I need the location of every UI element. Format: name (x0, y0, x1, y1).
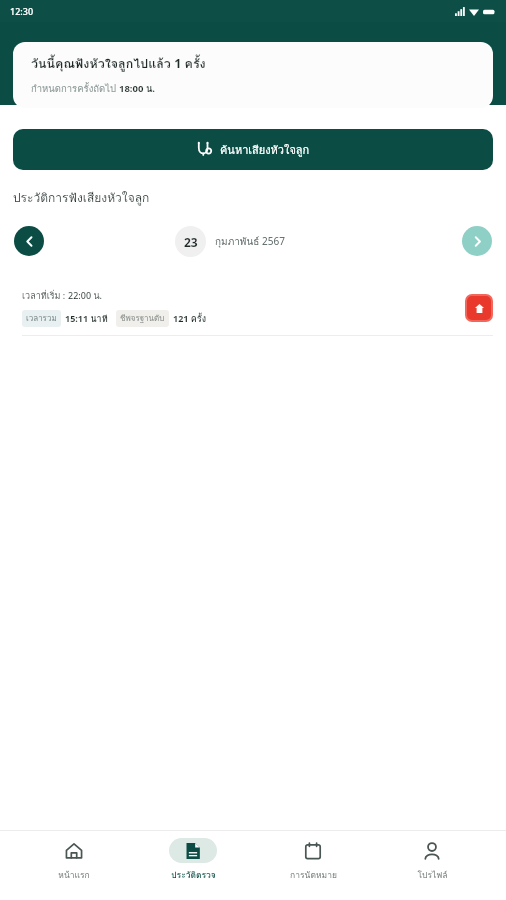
staticText: 23 (184, 234, 198, 250)
staticText: กุมภาพันธ์ 2567 (215, 234, 285, 250)
button[interactable]: ค้นหาเสียงหัวใจลูก (13, 129, 493, 170)
staticText: วันนี้คุณฟังหัวใจลูกไปแล้ว 1 ครั้ง (31, 54, 206, 74)
button[interactable]: หน้าแรก (28, 836, 120, 882)
staticText: 12:30 (10, 5, 34, 17)
staticText: หน้าแรก (58, 868, 90, 882)
staticText: 22:00 น. (68, 289, 102, 303)
staticText: 15:11 นาที (65, 312, 108, 326)
button[interactable]: Delete record (467, 296, 491, 320)
button[interactable]: Previous day (14, 226, 44, 256)
staticText: กำหนดการครั้งถัดไป (31, 81, 119, 96)
staticText: เวลารวม (26, 312, 57, 325)
button[interactable]: ประวัติตรวจ (147, 836, 239, 882)
button[interactable]: การนัดหมาย (267, 836, 359, 882)
staticText: โปรไฟล์ (417, 868, 448, 882)
staticText: 121 ครั้ง (173, 312, 207, 326)
staticText: ค้นหาเสียงหัวใจลูก (220, 141, 310, 158)
button[interactable]: โปรไฟล์ (386, 836, 478, 882)
button[interactable]: วันนี้คุณฟังหัวใจลูกไปแล้ว 1 ครั้ง (13, 42, 493, 108)
staticText: ประวัติการฟังเสียงหัวใจลูก (13, 188, 150, 207)
staticText: ประวัติตรวจ (171, 868, 216, 882)
staticText: 18:00 น. (119, 81, 156, 96)
staticText: การนัดหมาย (290, 868, 337, 882)
button[interactable]: Next day (462, 226, 492, 256)
button[interactable]: เวลาที่เริ่ม : (13, 281, 493, 335)
staticText: เวลาที่เริ่ม : (22, 289, 68, 303)
staticText: ชีพจรฐานดับ (120, 312, 165, 325)
